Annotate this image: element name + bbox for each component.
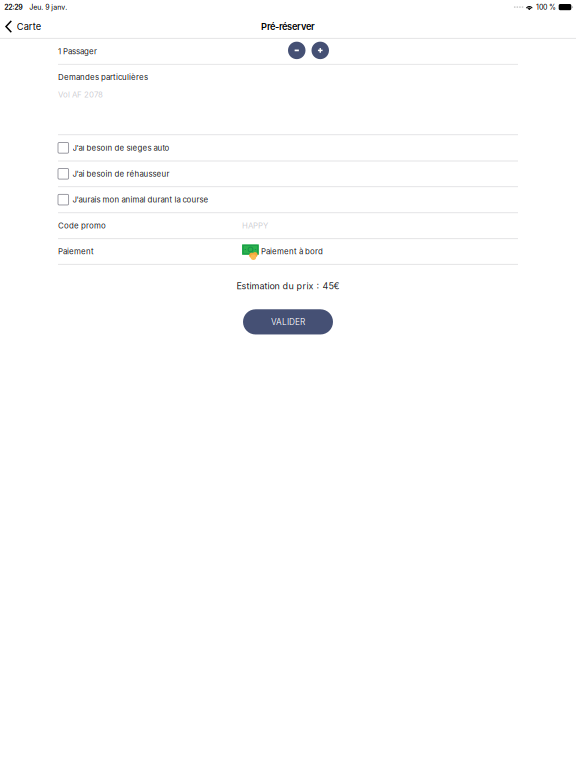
staticText: Vol AF 2078	[58, 90, 103, 99]
button[interactable]: J'aurais mon animal durant la course	[58, 187, 518, 212]
button[interactable]: Vol AF 2078	[58, 90, 518, 99]
button[interactable]: J'ai besoin de sièges auto	[58, 135, 518, 160]
staticText: 1 Passager	[58, 47, 97, 56]
button[interactable]: Carte	[0, 14, 49, 39]
staticText: Paiement	[58, 247, 94, 256]
staticText: Estimation du prix : 45€	[236, 281, 339, 291]
staticText: Carte	[17, 21, 41, 32]
staticText: Code promo	[58, 221, 106, 230]
staticText: 100 %	[536, 3, 556, 11]
staticText: HAPPY	[242, 221, 268, 230]
button[interactable]: Ajouter un passager	[311, 42, 329, 59]
staticText: Jeu. 9 janv.	[29, 3, 67, 11]
staticText: Paiement à bord	[261, 247, 323, 256]
button[interactable]: Paiement	[58, 239, 518, 264]
staticText: J'ai besoin de sièges auto	[73, 143, 170, 153]
staticText: Demandes particulières	[58, 72, 148, 82]
button[interactable]: Code promo	[58, 213, 518, 238]
staticText: Pré-réserver	[261, 21, 315, 32]
staticText: J'aurais mon animal durant la course	[73, 195, 209, 204]
staticText: J'ai besoin de réhausseur	[73, 169, 170, 179]
staticText: 22:29	[4, 3, 23, 11]
button[interactable]: VALIDER	[243, 309, 333, 334]
staticText: VALIDER	[271, 317, 305, 327]
button[interactable]: J'ai besoin de réhausseur	[58, 161, 518, 186]
button[interactable]: Retirer un passager	[288, 42, 305, 59]
